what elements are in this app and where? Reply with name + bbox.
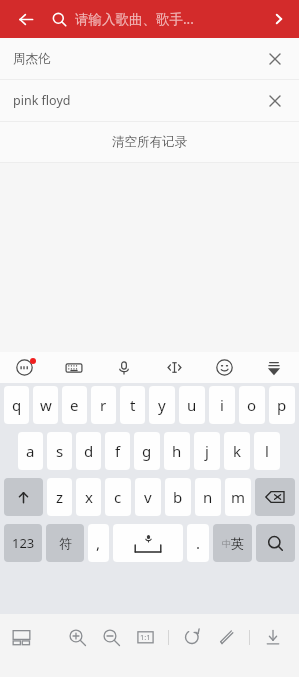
- staticText: 1:1: [140, 632, 151, 642]
- staticText: 请输入歌曲、歌手...: [75, 10, 194, 28]
- button[interactable]: m: [225, 478, 251, 516]
- staticText: m: [231, 487, 246, 507]
- button[interactable]: 请输入歌曲、歌手...: [52, 0, 259, 38]
- button[interactable]: k: [224, 432, 250, 470]
- button[interactable]: Period: [187, 524, 209, 562]
- button[interactable]: Delete 周杰伦: [256, 40, 294, 78]
- button[interactable]: x: [76, 478, 101, 516]
- staticText: s: [56, 441, 64, 461]
- staticText: t: [130, 395, 136, 415]
- button[interactable]: b: [165, 478, 191, 516]
- button[interactable]: Edit: [209, 620, 243, 654]
- button[interactable]: Rotate: [175, 620, 209, 654]
- staticText: 英: [231, 535, 244, 551]
- staticText: g: [142, 441, 152, 461]
- staticText: r: [100, 395, 107, 415]
- staticText: pink floyd: [13, 92, 71, 109]
- button[interactable]: h: [164, 432, 190, 470]
- staticText: p: [277, 395, 287, 415]
- staticText: q: [12, 395, 22, 415]
- button[interactable]: Delete pink floyd: [256, 82, 294, 120]
- button[interactable]: Input method: [0, 352, 49, 383]
- button[interactable]: 清空所有记录: [0, 122, 299, 162]
- staticText: c: [114, 487, 122, 507]
- staticText: j: [205, 441, 209, 461]
- button[interactable]: Space: [113, 524, 183, 562]
- button[interactable]: 123: [4, 524, 42, 562]
- button[interactable]: v: [135, 478, 161, 516]
- staticText: x: [85, 487, 93, 507]
- button[interactable]: p: [269, 386, 295, 424]
- staticText: w: [40, 395, 52, 415]
- button[interactable]: s: [47, 432, 72, 470]
- staticText: a: [26, 441, 35, 461]
- button[interactable]: r: [91, 386, 116, 424]
- staticText: 123: [12, 534, 35, 552]
- staticText: n: [203, 487, 213, 507]
- button[interactable]: Zoom out: [94, 620, 128, 654]
- button[interactable]: Emoji: [199, 352, 249, 383]
- button[interactable]: Download: [256, 620, 290, 654]
- staticText: i: [220, 395, 224, 415]
- button[interactable]: Search: [256, 524, 295, 562]
- staticText: b: [173, 487, 183, 507]
- staticText: .: [196, 533, 201, 553]
- button[interactable]: Backspace: [255, 478, 295, 516]
- staticText: ,: [96, 533, 101, 553]
- button[interactable]: u: [179, 386, 205, 424]
- staticText: 清空所有记录: [112, 134, 187, 150]
- button[interactable]: e: [62, 386, 87, 424]
- button[interactable]: Comma: [88, 524, 109, 562]
- staticText: k: [233, 441, 242, 461]
- staticText: d: [84, 441, 94, 461]
- staticText: e: [70, 395, 79, 415]
- button[interactable]: 周杰伦: [0, 38, 299, 79]
- button[interactable]: Hide keyboard: [249, 352, 299, 383]
- button[interactable]: w: [33, 386, 58, 424]
- staticText: f: [115, 441, 121, 461]
- button[interactable]: y: [149, 386, 175, 424]
- button[interactable]: a: [18, 432, 43, 470]
- staticText: l: [265, 441, 269, 461]
- button[interactable]: q: [4, 386, 29, 424]
- button[interactable]: o: [239, 386, 265, 424]
- button[interactable]: Keyboard: [49, 352, 99, 383]
- button[interactable]: c: [105, 478, 131, 516]
- button[interactable]: pink floyd: [0, 80, 299, 121]
- staticText: 符: [59, 535, 72, 551]
- button[interactable]: t: [120, 386, 145, 424]
- staticText: y: [158, 395, 166, 415]
- button[interactable]: f: [105, 432, 130, 470]
- button[interactable]: Actual size: [128, 620, 162, 654]
- staticText: 周杰伦: [13, 51, 51, 67]
- button[interactable]: Shift: [4, 478, 43, 516]
- button[interactable]: n: [195, 478, 221, 516]
- button[interactable]: Layout: [4, 620, 38, 654]
- button[interactable]: g: [134, 432, 160, 470]
- button[interactable]: Switch language: [213, 524, 252, 562]
- button[interactable]: z: [47, 478, 72, 516]
- button[interactable]: 符: [46, 524, 84, 562]
- staticText: 中: [222, 538, 231, 549]
- button[interactable]: l: [254, 432, 280, 470]
- staticText: h: [172, 441, 182, 461]
- button[interactable]: d: [76, 432, 101, 470]
- button[interactable]: j: [194, 432, 220, 470]
- staticText: v: [144, 487, 152, 507]
- button[interactable]: Zoom in: [60, 620, 94, 654]
- staticText: u: [187, 395, 197, 415]
- button[interactable]: i: [209, 386, 235, 424]
- button[interactable]: Search: [259, 0, 299, 38]
- button[interactable]: Voice input: [99, 352, 149, 383]
- button[interactable]: Cursor control: [149, 352, 199, 383]
- staticText: z: [56, 487, 64, 507]
- staticText: o: [247, 395, 257, 415]
- button[interactable]: Back: [0, 0, 52, 38]
